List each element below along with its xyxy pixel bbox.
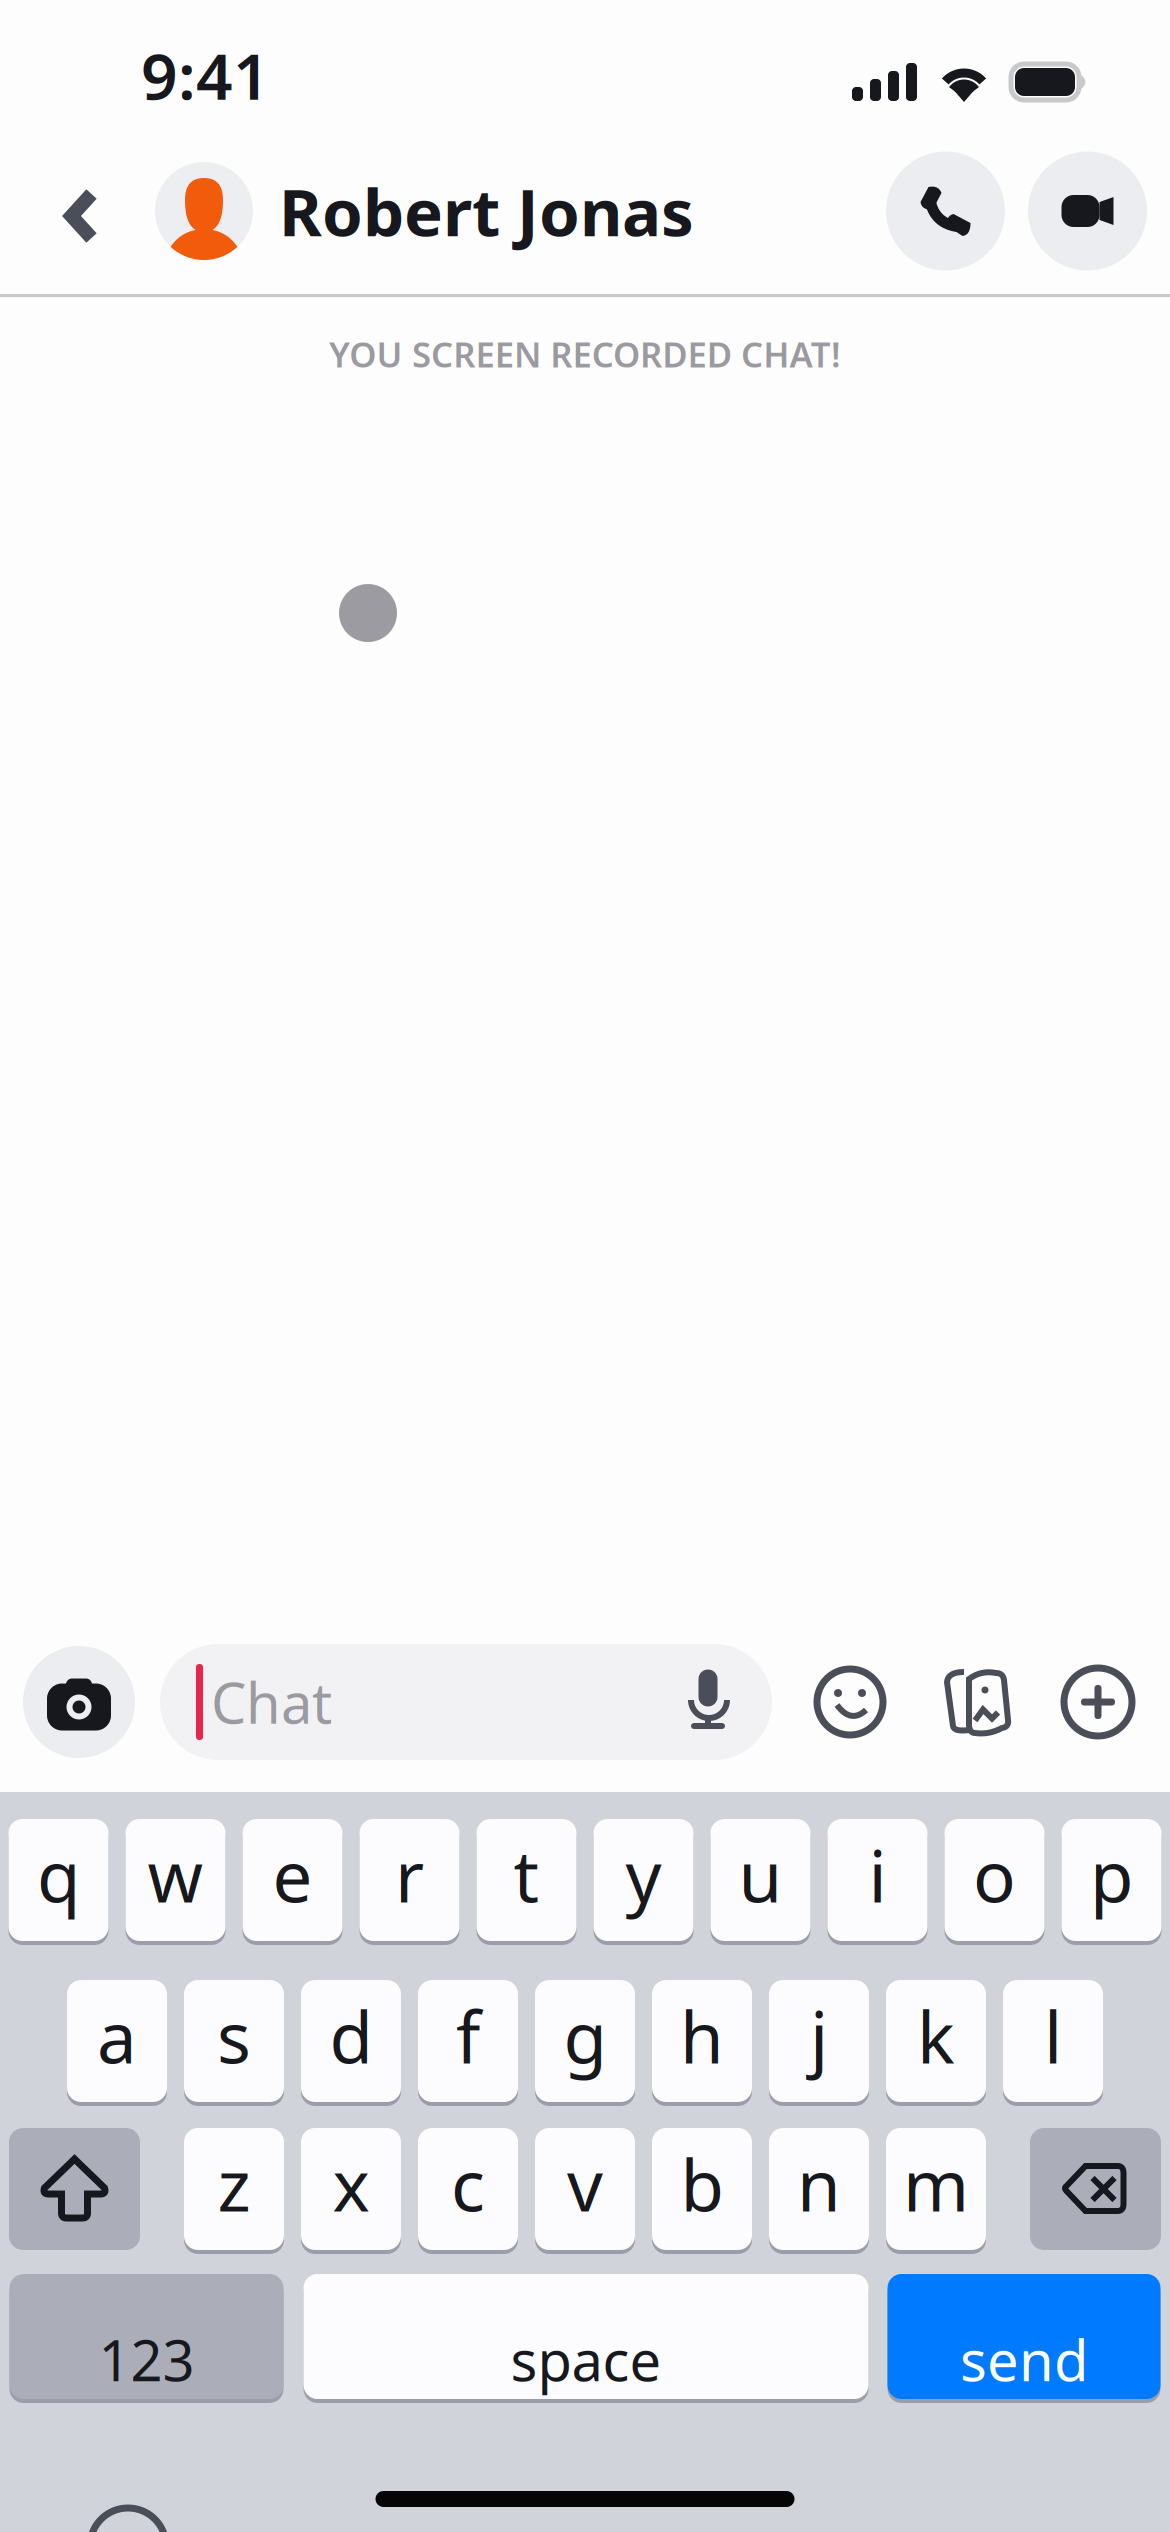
button[interactable]: More	[1042, 1644, 1154, 1760]
staticText: i	[868, 1828, 886, 1922]
button[interactable]: p	[1061, 1819, 1161, 1941]
button[interactable]: Robert Jonas	[140, 162, 694, 260]
staticText: d	[329, 1989, 372, 2083]
button[interactable]: x	[301, 2128, 401, 2250]
staticText: Chat	[211, 1665, 332, 1739]
staticText: b	[680, 2137, 723, 2231]
button[interactable]: q	[8, 1819, 108, 1941]
button[interactable]: Back	[23, 156, 140, 266]
staticText: m	[903, 2137, 969, 2231]
staticText: r	[395, 1828, 424, 1922]
staticText: a	[97, 1989, 137, 2083]
button[interactable]: r	[359, 1819, 459, 1941]
button[interactable]: g	[535, 1980, 635, 2102]
staticText: g	[563, 1989, 606, 2083]
button[interactable]: k	[886, 1980, 986, 2102]
button[interactable]: Next keyboard	[90, 2508, 166, 2532]
staticText: f	[456, 1989, 480, 2083]
staticText: send	[960, 2322, 1088, 2397]
button[interactable]: b	[652, 2128, 752, 2250]
button[interactable]: y	[593, 1819, 693, 1941]
staticText: x	[332, 2137, 369, 2231]
button[interactable]: z	[184, 2128, 284, 2250]
button[interactable]: e	[242, 1819, 342, 1941]
button[interactable]: u	[710, 1819, 810, 1941]
staticText: v	[567, 2137, 603, 2231]
button[interactable]: Video call	[1028, 151, 1147, 270]
button[interactable]: j	[769, 1980, 869, 2102]
staticText: n	[797, 2137, 841, 2231]
button[interactable]: Camera	[23, 1646, 135, 1758]
button[interactable]: 123	[9, 2274, 283, 2399]
staticText: h	[680, 1989, 724, 2083]
button[interactable]: Emoji	[794, 1644, 906, 1760]
staticText: space	[510, 2322, 661, 2397]
staticText: s	[217, 1989, 251, 2083]
button[interactable]: Stickers	[920, 1644, 1032, 1760]
staticText: 123	[98, 2322, 194, 2397]
button[interactable]: s	[184, 1980, 284, 2102]
button[interactable]: f	[418, 1980, 518, 2102]
staticText: z	[217, 2137, 250, 2231]
button[interactable]: l	[1003, 1980, 1103, 2102]
staticText: y	[625, 1828, 661, 1922]
button[interactable]: d	[301, 1980, 401, 2102]
button[interactable]: c	[418, 2128, 518, 2250]
button[interactable]: Shift	[9, 2128, 140, 2250]
button[interactable]: t	[476, 1819, 576, 1941]
button[interactable]: Audio call	[886, 151, 1005, 270]
button[interactable]: n	[769, 2128, 869, 2250]
staticText: Robert Jonas	[279, 168, 694, 254]
button[interactable]: w	[125, 1819, 225, 1941]
staticText: 9:41	[141, 32, 270, 117]
button[interactable]: o	[944, 1819, 1044, 1941]
staticText: j	[810, 1989, 828, 2083]
staticText: w	[147, 1828, 203, 1922]
staticText: YOU SCREEN RECORDED CHAT!	[329, 331, 841, 377]
staticText: t	[513, 1828, 539, 1922]
staticText: u	[738, 1828, 782, 1922]
staticText: e	[272, 1828, 312, 1922]
button[interactable]: m	[886, 2128, 986, 2250]
staticText: q	[37, 1828, 80, 1922]
button[interactable]: send	[887, 2274, 1160, 2399]
button[interactable]: a	[67, 1980, 167, 2102]
button[interactable]: i	[827, 1819, 927, 1941]
staticText: k	[917, 1989, 955, 2083]
button[interactable]: h	[652, 1980, 752, 2102]
staticText: l	[1044, 1989, 1062, 2083]
button[interactable]: Chat	[160, 1644, 772, 1760]
staticText: p	[1090, 1828, 1133, 1922]
button[interactable]: v	[535, 2128, 635, 2250]
button[interactable]: space	[303, 2274, 868, 2399]
staticText: c	[451, 2137, 485, 2231]
staticText: o	[973, 1828, 1016, 1922]
button[interactable]: Delete	[1030, 2128, 1161, 2250]
